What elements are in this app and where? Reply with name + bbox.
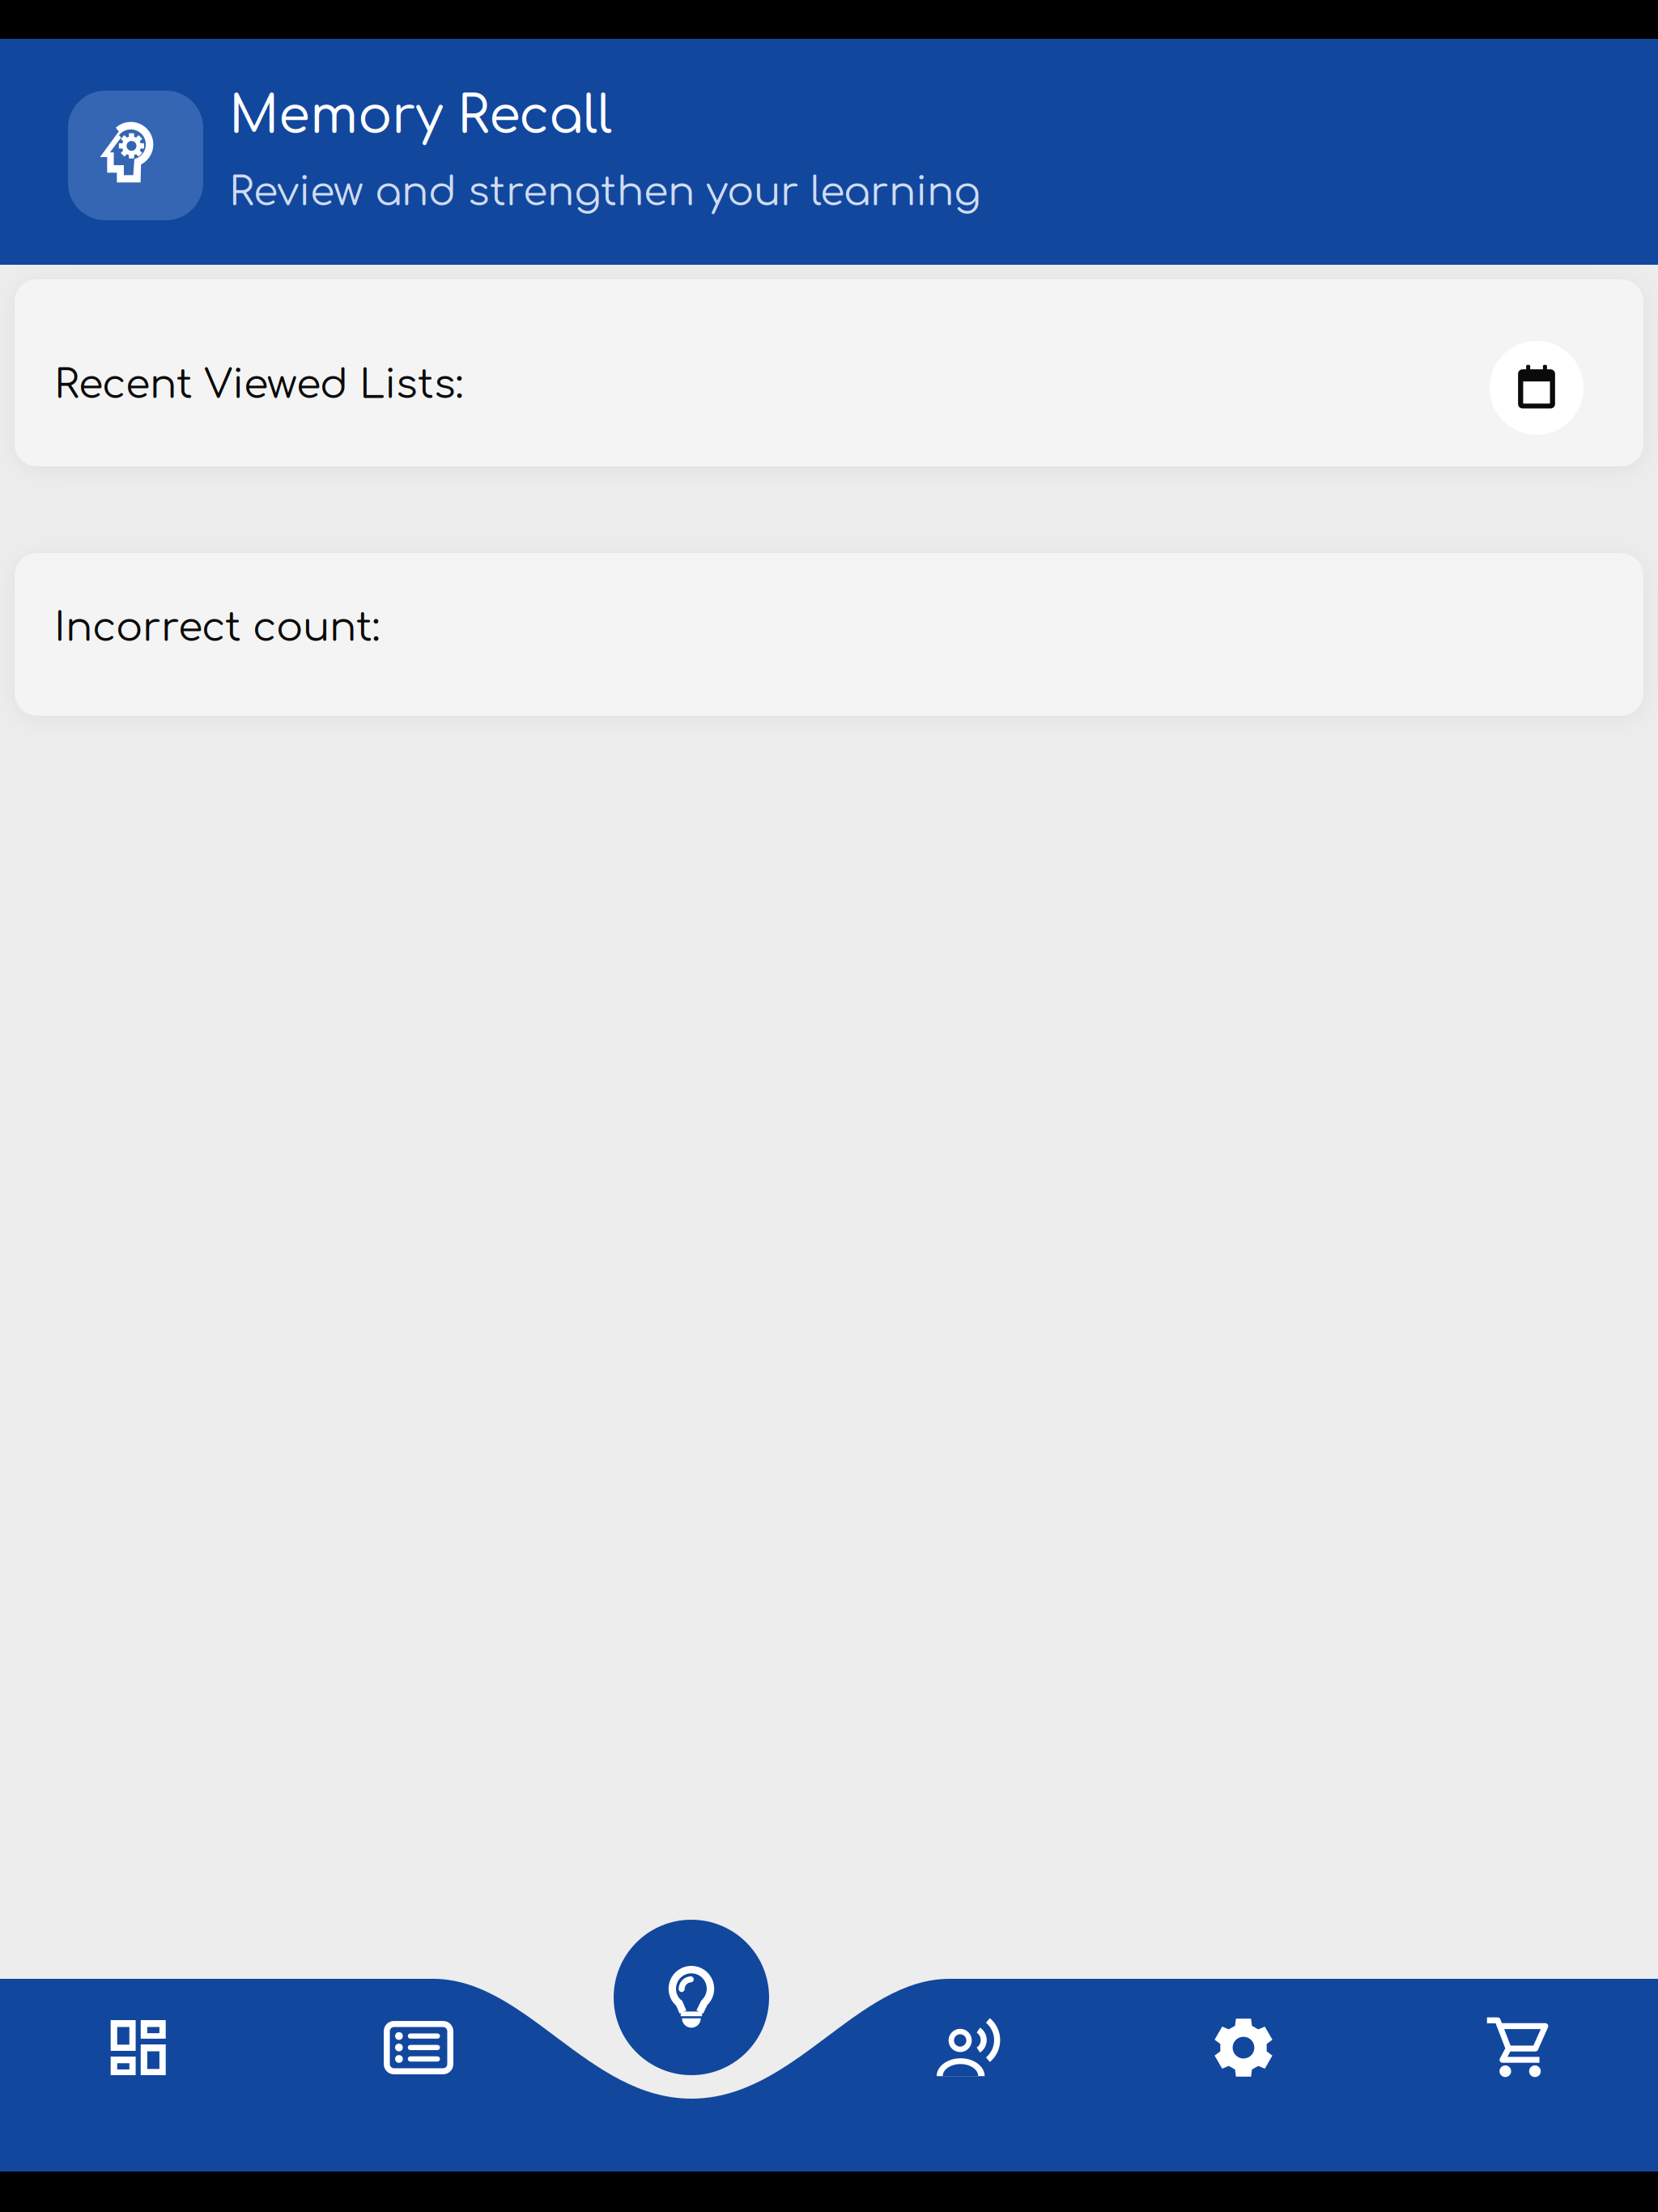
button[interactable]: Dashboard — [0, 1975, 276, 2121]
staticText: Incorrect count: — [54, 606, 380, 650]
button[interactable]: Speak — [832, 1975, 1108, 2121]
button[interactable]: Cart — [1379, 1975, 1655, 2121]
staticText: Memory Recall — [229, 88, 612, 145]
button[interactable]: Pick a date — [1490, 341, 1584, 435]
button[interactable]: Incorrect count: — [15, 553, 1643, 716]
button[interactable]: Settings — [1105, 1975, 1382, 2121]
staticText: Review and strengthen your learning — [229, 170, 980, 215]
button[interactable]: Lists — [280, 1975, 557, 2121]
staticText: Recent Viewed Lists: — [54, 363, 464, 407]
button[interactable]: Recent Viewed Lists: — [15, 279, 1643, 466]
button[interactable]: Hint — [614, 1920, 769, 2075]
